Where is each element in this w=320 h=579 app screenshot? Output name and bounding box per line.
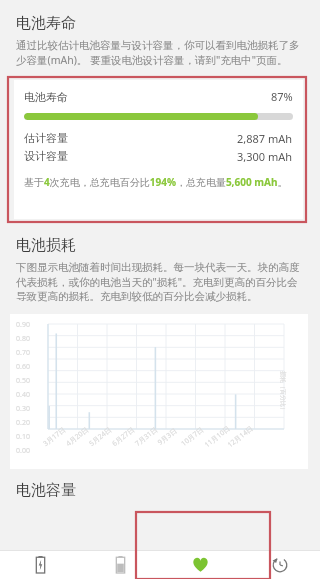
staticText: 损耗（百分比） [279,371,287,413]
staticText: 0.90 [16,320,30,330]
button[interactable]: Battery health [160,550,240,579]
button[interactable]: Battery level [80,550,160,579]
staticText: 估计容量 [24,131,68,145]
staticText: 5月24日 [87,425,114,449]
staticText: 0.00 [16,446,30,456]
staticText: 2,887 mAh [237,131,293,146]
staticText: 9月3日 [155,426,180,448]
button[interactable]: History [240,550,320,579]
staticText: 11月10日 [202,423,233,450]
staticText: 0.60 [16,362,30,372]
staticText: 0.30 [16,404,30,414]
staticText: 电池容量 [16,481,76,500]
staticText: 12月14日 [225,423,256,450]
staticText: 0.80 [16,334,30,344]
staticText: 设计容量 [24,149,68,163]
staticText: 87% [271,89,293,104]
staticText: 下图显示电池随着时间出现损耗。每一块代表一天。块的高度代表损耗，或你的电池当天的… [16,261,306,304]
button[interactable]: Charging [0,550,80,579]
staticText: 通过比较估计电池容量与设计容量，你可以看到电池损耗了多少容量(mAh)。 要重设… [16,39,306,67]
staticText: 0.50 [16,376,30,386]
staticText: 3月17日 [41,425,68,449]
staticText: 0.20 [16,418,30,428]
staticText: 电池寿命 [24,90,68,104]
staticText: 电池寿命 [16,14,76,33]
staticText: 10月7日 [179,425,206,449]
button[interactable]: 电池寿命 [14,80,303,219]
staticText: 0.70 [16,348,30,358]
staticText: 7月31日 [133,425,160,449]
staticText: 4月20日 [64,425,91,449]
staticText: 0.10 [16,432,30,442]
staticText: 基于4次充电，总充电百分比194%，总充电量5,600 mAh。 [24,175,288,189]
staticText: 电池损耗 [16,236,76,255]
staticText: 6月27日 [110,425,137,449]
staticText: 3,300 mAh [237,149,293,164]
staticText: 0.40 [16,390,30,400]
